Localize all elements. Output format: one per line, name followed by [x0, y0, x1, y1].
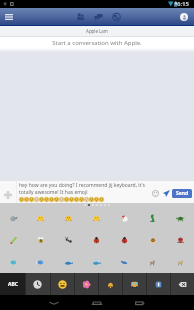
button[interactable]: Add attachment: [0, 181, 16, 203]
button[interactable]: Emoji 18: [110, 251, 138, 273]
button[interactable]: Emoji 10: [82, 229, 110, 251]
staticText: 6:15: [177, 0, 189, 8]
button[interactable]: Recent emoji: [25, 273, 50, 295]
button[interactable]: Menu: [0, 8, 18, 25]
staticText: Send: [176, 190, 189, 197]
button[interactable]: Emoji 15: [27, 251, 54, 273]
button[interactable]: Emoji 7: [0, 229, 27, 251]
button[interactable]: Symbols: [146, 273, 170, 295]
button[interactable]: Emoji picker: [150, 188, 161, 199]
button[interactable]: Send: [172, 189, 192, 198]
staticText: hey how are you doing? I recommend jij k…: [19, 182, 145, 189]
button[interactable]: Places: [122, 273, 146, 295]
button[interactable]: Quick send: [161, 188, 172, 199]
button[interactable]: Emoji 13: [166, 229, 194, 251]
button[interactable]: Home: [83, 295, 111, 310]
button[interactable]: Emoji 11: [110, 229, 138, 251]
button[interactable]: Emoji 0: [0, 207, 27, 229]
staticText: Start a conversation with Apple.: [52, 39, 142, 47]
button[interactable]: Emoji 19: [138, 251, 166, 273]
button[interactable]: Emoji 4: [110, 207, 138, 229]
button[interactable]: Emoji 3: [82, 207, 110, 229]
button[interactable]: Emoji 1: [27, 207, 54, 229]
button[interactable]: Smileys: [50, 273, 74, 295]
staticText: ABC: [8, 281, 18, 288]
button[interactable]: Friends: [73, 10, 87, 24]
button[interactable]: Emoji 5: [138, 207, 166, 229]
button[interactable]: Emoji 20: [166, 251, 194, 273]
button[interactable]: Notifications: [109, 10, 123, 24]
staticText: Apple Lam: [86, 28, 108, 34]
button[interactable]: Emoji 6: [166, 207, 194, 229]
button[interactable]: Messages: [91, 10, 105, 24]
button[interactable]: ABC keyboard: [0, 273, 25, 295]
button[interactable]: Recents: [126, 295, 154, 310]
button[interactable]: Back: [40, 295, 68, 310]
staticText: totally awesome! It has emoji: [19, 189, 88, 196]
button[interactable]: Emoji 2: [54, 207, 82, 229]
button[interactable]: Nature: [74, 273, 98, 295]
button[interactable]: Profile: [180, 13, 188, 21]
button[interactable]: Objects: [98, 273, 122, 295]
button[interactable]: Emoji 14: [0, 251, 27, 273]
button[interactable]: Emoji 17: [82, 251, 110, 273]
button[interactable]: Emoji 8: [27, 229, 54, 251]
button[interactable]: Emoji 9: [54, 229, 82, 251]
button[interactable]: Emoji 12: [138, 229, 166, 251]
button[interactable]: Emoji 16: [54, 251, 82, 273]
button[interactable]: Backspace: [170, 273, 194, 295]
